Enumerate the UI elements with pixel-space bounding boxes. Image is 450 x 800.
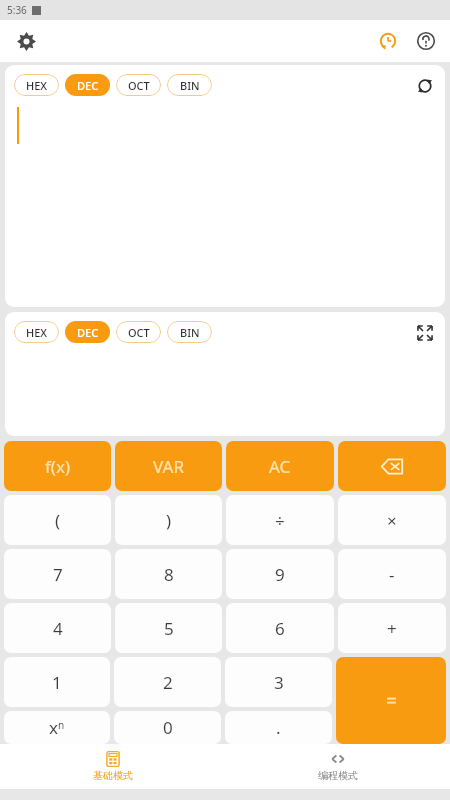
staticText: OCT <box>128 325 150 340</box>
button[interactable]: - <box>338 549 446 599</box>
button[interactable]: f(x) <box>4 441 111 491</box>
button[interactable]: DEC <box>65 74 110 96</box>
button[interactable]: Backspace <box>338 441 446 491</box>
button[interactable]: 1 <box>4 657 110 707</box>
staticText: ( <box>55 509 61 532</box>
button[interactable]: OCT <box>116 74 161 96</box>
staticText: DEC <box>77 78 99 93</box>
button[interactable]: Help <box>410 25 442 57</box>
staticText: f(x) <box>45 455 71 478</box>
staticText: 7 <box>53 563 63 586</box>
staticText: - <box>389 563 395 586</box>
button[interactable]: 6 <box>226 603 334 653</box>
staticText: + <box>387 617 397 640</box>
button[interactable]: 8 <box>115 549 222 599</box>
staticText: 8 <box>164 563 174 586</box>
button[interactable]: ( <box>4 495 111 545</box>
staticText: = <box>386 688 397 714</box>
button[interactable]: HEX <box>14 74 59 96</box>
button[interactable]: Expand <box>410 318 440 348</box>
button[interactable]: 9 <box>226 549 334 599</box>
button[interactable]: 3 <box>225 657 332 707</box>
staticText: 1 <box>52 671 62 694</box>
staticText: DEC <box>77 325 99 340</box>
button[interactable]: . <box>225 711 332 744</box>
staticText: × <box>387 509 397 532</box>
button[interactable]: BIN <box>167 74 212 96</box>
button[interactable]: OCT <box>116 321 161 343</box>
staticText: ) <box>166 509 172 532</box>
staticText: 5 <box>164 617 174 640</box>
button[interactable]: 基础模式 <box>0 744 225 789</box>
button[interactable]: 4 <box>4 603 111 653</box>
button[interactable]: ÷ <box>226 495 334 545</box>
staticText: 基础模式 <box>93 769 133 782</box>
button[interactable]: 0 <box>114 711 221 744</box>
staticText: BIN <box>180 78 200 93</box>
staticText: ÷ <box>275 509 285 532</box>
staticText: VAR <box>153 455 184 478</box>
button[interactable]: × <box>338 495 446 545</box>
button[interactable]: + <box>338 603 446 653</box>
button[interactable]: BIN <box>167 321 212 343</box>
button[interactable]: AC <box>226 441 334 491</box>
staticText: OCT <box>128 78 150 93</box>
staticText: BIN <box>180 325 200 340</box>
button[interactable]: HEX <box>14 321 59 343</box>
staticText: 3 <box>274 671 284 694</box>
staticText: 编程模式 <box>318 769 358 782</box>
staticText: HEX <box>26 78 48 93</box>
staticText: HEX <box>26 325 48 340</box>
staticText: xn <box>49 716 65 739</box>
button[interactable]: = <box>336 657 446 744</box>
button[interactable]: 2 <box>114 657 221 707</box>
staticText: AC <box>269 455 291 478</box>
button[interactable]: 7 <box>4 549 111 599</box>
staticText: 4 <box>53 617 63 640</box>
staticText: 9 <box>275 563 285 586</box>
button[interactable]: Settings <box>10 25 42 57</box>
staticText: 2 <box>163 671 173 694</box>
button[interactable]: 5 <box>115 603 222 653</box>
button[interactable]: Refresh <box>410 71 440 101</box>
staticText: 6 <box>275 617 285 640</box>
button[interactable]: DEC <box>65 321 110 343</box>
button[interactable]: 编程模式 <box>225 744 450 789</box>
staticText: 0 <box>163 716 173 739</box>
button[interactable]: ) <box>115 495 222 545</box>
button[interactable]: xn <box>4 711 110 744</box>
button[interactable]: History <box>372 25 404 57</box>
staticText: 5:36 <box>7 3 27 17</box>
button[interactable]: VAR <box>115 441 222 491</box>
staticText: . <box>276 716 281 739</box>
